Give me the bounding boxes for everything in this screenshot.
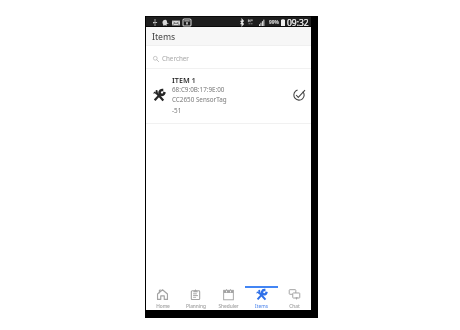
button[interactable]: Sheduler	[212, 284, 245, 310]
staticText: Items	[255, 303, 268, 310]
button[interactable]: Connected	[289, 85, 309, 105]
button[interactable]: Home	[146, 284, 179, 310]
staticText: -51	[172, 106, 182, 115]
staticText: 09:32	[287, 17, 309, 28]
button[interactable]: Chat	[278, 284, 311, 310]
staticText: Planning	[186, 303, 206, 310]
staticText: Sheduler	[218, 303, 239, 310]
staticText: Home	[156, 303, 170, 310]
staticText: ITEM 1	[172, 75, 196, 85]
button[interactable]: ITEM 1	[146, 69, 311, 123]
staticText: Chat	[289, 303, 300, 310]
button[interactable]: Planning	[179, 284, 212, 310]
staticText: Items	[152, 31, 175, 43]
staticText: Chercher	[162, 54, 189, 63]
button[interactable]: Search	[146, 46, 311, 68]
staticText: 68:C9:0B:17:9E:00	[172, 85, 225, 94]
other: Search	[153, 56, 159, 62]
staticText: CC2650 SensorTag	[172, 95, 227, 104]
staticText: 99%	[269, 19, 279, 26]
button[interactable]: Items	[245, 284, 278, 310]
